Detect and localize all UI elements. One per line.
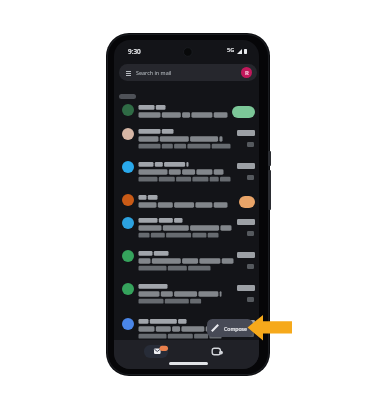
button[interactable]: Compose: [207, 319, 253, 337]
button[interactable]: Meet: [205, 342, 233, 360]
button[interactable]: [114, 102, 259, 124]
staticText: Search in mail: [136, 69, 172, 76]
staticText: R: [245, 69, 249, 77]
staticText: 9:30: [128, 47, 141, 56]
staticText: 5G: [227, 46, 235, 54]
staticText: Compose: [224, 325, 248, 332]
button[interactable]: [114, 248, 259, 277]
button[interactable]: [114, 316, 259, 345]
button[interactable]: [114, 215, 259, 244]
button[interactable]: [114, 281, 259, 310]
button[interactable]: Search in mail: [119, 64, 257, 81]
button[interactable]: Account: [241, 67, 252, 78]
button[interactable]: Mail: [140, 342, 172, 360]
button[interactable]: [114, 126, 259, 155]
button[interactable]: [114, 159, 259, 188]
button[interactable]: [114, 192, 259, 214]
